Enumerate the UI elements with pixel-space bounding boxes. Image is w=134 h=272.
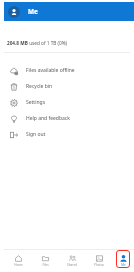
staticText: Photos: [94, 263, 104, 267]
button[interactable]: Photos: [92, 250, 106, 268]
staticText: Shared: [67, 263, 77, 267]
staticText: 204.8 MB: [7, 40, 28, 46]
staticText: Files available offline: [26, 67, 75, 74]
button[interactable]: Me: [116, 250, 130, 268]
staticText: Me: [28, 7, 38, 16]
staticText: Home: [14, 263, 23, 267]
button[interactable]: Recycle bin: [4, 78, 134, 94]
button[interactable]: Settings: [4, 94, 134, 110]
staticText: Sign out: [26, 131, 46, 138]
button[interactable]: Shared: [65, 250, 79, 268]
button[interactable]: Sign out: [4, 126, 134, 142]
button[interactable]: Help and feedback: [4, 110, 134, 126]
staticText: Recycle bin: [26, 83, 53, 90]
staticText: used of 1 TB (0%): [28, 40, 67, 46]
button[interactable]: Files: [38, 250, 52, 268]
button[interactable]: Home: [11, 250, 25, 268]
staticText: Files: [42, 263, 49, 267]
button[interactable]: Account: [8, 6, 20, 18]
staticText: Help and feedback: [26, 115, 70, 122]
staticText: Settings: [26, 99, 46, 106]
button[interactable]: Files available offline: [4, 62, 134, 78]
staticText: Me: [121, 263, 126, 267]
